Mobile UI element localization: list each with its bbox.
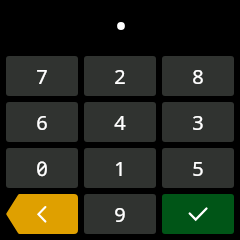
button[interactable]: 4 xyxy=(84,102,156,142)
staticText: 1 xyxy=(114,155,126,182)
button[interactable]: Delete xyxy=(6,194,78,234)
staticText: 5 xyxy=(192,155,204,182)
button[interactable]: 0 xyxy=(6,148,78,188)
button[interactable]: 3 xyxy=(162,102,234,142)
button[interactable]: 2 xyxy=(84,56,156,96)
button[interactable]: 9 xyxy=(84,194,156,234)
button[interactable]: Confirm xyxy=(162,194,234,234)
staticText: 2 xyxy=(114,63,126,90)
staticText: 4 xyxy=(114,109,126,136)
button[interactable]: 6 xyxy=(6,102,78,142)
button[interactable]: 5 xyxy=(162,148,234,188)
staticText: 3 xyxy=(192,109,204,136)
staticText: 7 xyxy=(36,63,48,90)
staticText: 8 xyxy=(192,63,204,90)
button[interactable]: 1 xyxy=(84,148,156,188)
button[interactable]: 8 xyxy=(162,56,234,96)
staticText: 0 xyxy=(36,155,48,182)
staticText: 9 xyxy=(114,201,126,228)
button[interactable]: 7 xyxy=(6,56,78,96)
staticText: 6 xyxy=(36,109,48,136)
